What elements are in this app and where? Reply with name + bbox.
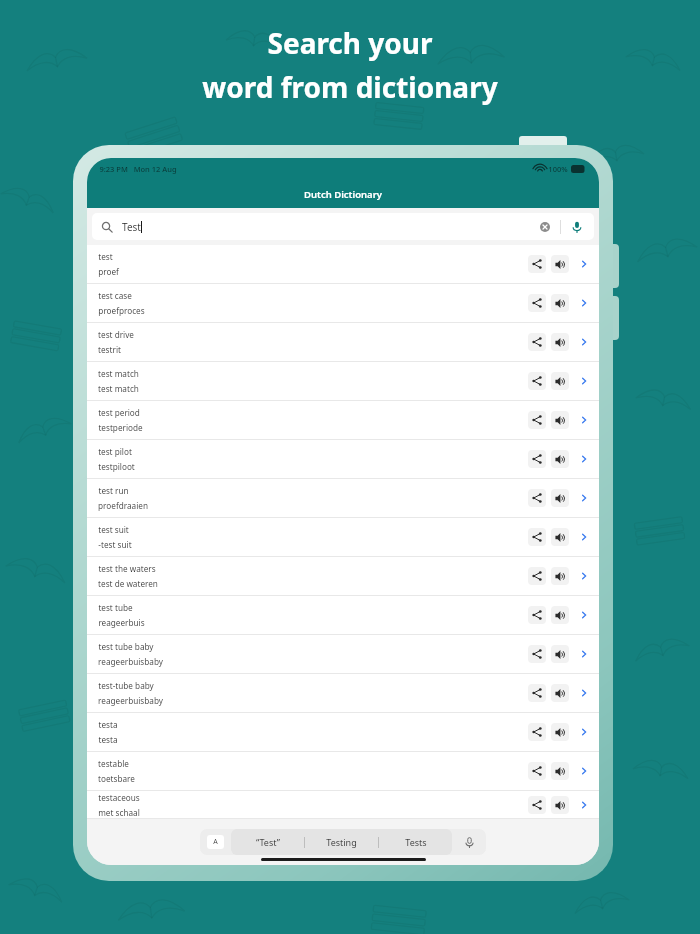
staticText: “Test” xyxy=(256,836,280,848)
button[interactable]: test pilot xyxy=(87,440,599,479)
button[interactable]: Pronounce xyxy=(551,645,569,663)
staticText: test match xyxy=(98,383,139,394)
button[interactable]: Open details xyxy=(577,374,591,388)
staticText: proefproces xyxy=(98,305,145,316)
staticText: test-tube baby xyxy=(98,680,154,691)
button[interactable]: Open details xyxy=(577,491,591,505)
staticText: test de wateren xyxy=(98,578,158,589)
button[interactable]: Share xyxy=(528,294,546,312)
button[interactable]: Open details xyxy=(577,798,591,812)
button[interactable]: Pronounce xyxy=(551,294,569,312)
button[interactable]: Share xyxy=(528,528,546,546)
button[interactable]: Open details xyxy=(577,413,591,427)
button[interactable]: Share xyxy=(528,255,546,273)
staticText: Test xyxy=(122,220,141,234)
button[interactable]: Open details xyxy=(577,764,591,778)
button[interactable]: test period xyxy=(87,401,599,440)
staticText: test the waters xyxy=(98,563,156,574)
button[interactable]: testa xyxy=(87,713,599,752)
button[interactable]: Share xyxy=(528,411,546,429)
button[interactable]: Open details xyxy=(577,530,591,544)
button[interactable]: Open details xyxy=(577,569,591,583)
button[interactable]: Open details xyxy=(577,296,591,310)
button[interactable]: test suit xyxy=(87,518,599,557)
staticText: test drive xyxy=(98,329,134,340)
button[interactable]: Share xyxy=(528,645,546,663)
button[interactable]: test case xyxy=(87,284,599,323)
staticText: A xyxy=(213,837,218,847)
button[interactable]: Pronounce xyxy=(551,567,569,585)
staticText: test run xyxy=(98,485,129,496)
staticText: testable xyxy=(98,758,129,769)
button[interactable]: test-tube baby xyxy=(87,674,599,713)
button[interactable]: Open details xyxy=(577,335,591,349)
button[interactable]: test the waters xyxy=(87,557,599,596)
button[interactable]: Pronounce xyxy=(551,372,569,390)
staticText: test tube xyxy=(98,602,133,613)
button[interactable]: “Test” xyxy=(231,829,304,855)
staticText: proefdraaien xyxy=(98,500,148,511)
staticText: testa xyxy=(98,719,118,730)
button[interactable]: Voice search xyxy=(569,219,585,235)
button[interactable]: Share xyxy=(528,333,546,351)
button[interactable]: Pronounce xyxy=(551,796,569,814)
button[interactable]: testaceous xyxy=(87,791,599,819)
button[interactable]: Share xyxy=(528,450,546,468)
button[interactable]: test drive xyxy=(87,323,599,362)
button[interactable]: Pronounce xyxy=(551,450,569,468)
staticText: word from dictionary xyxy=(202,68,498,106)
button[interactable]: testable xyxy=(87,752,599,791)
staticText: test match xyxy=(98,368,139,379)
staticText: Search your xyxy=(267,24,433,62)
button[interactable]: test run xyxy=(87,479,599,518)
button[interactable]: Pronounce xyxy=(551,411,569,429)
button[interactable]: Pronounce xyxy=(551,528,569,546)
button[interactable]: Open details xyxy=(577,647,591,661)
button[interactable]: Pronounce xyxy=(551,489,569,507)
button[interactable]: Keyboard layout xyxy=(207,835,224,849)
staticText: testaceous xyxy=(98,792,140,803)
button[interactable]: Share xyxy=(528,372,546,390)
staticText: test tube baby xyxy=(98,641,154,652)
button[interactable]: Pronounce xyxy=(551,606,569,624)
staticText: -test suit xyxy=(98,539,132,550)
button[interactable]: Open details xyxy=(577,725,591,739)
button[interactable]: test tube baby xyxy=(87,635,599,674)
button[interactable]: test match xyxy=(87,362,599,401)
button[interactable]: Tests xyxy=(379,829,452,855)
button[interactable]: Share xyxy=(528,684,546,702)
button[interactable]: Clear search xyxy=(537,219,553,235)
button[interactable]: Open details xyxy=(577,686,591,700)
button[interactable]: Share xyxy=(528,489,546,507)
staticText: testpiloot xyxy=(98,461,135,472)
button[interactable]: Share xyxy=(528,762,546,780)
button[interactable]: Pronounce xyxy=(551,333,569,351)
button[interactable]: Share xyxy=(528,567,546,585)
button[interactable]: Pronounce xyxy=(551,255,569,273)
button[interactable]: Open details xyxy=(577,608,591,622)
staticText: testrit xyxy=(98,344,121,355)
button[interactable]: Open details xyxy=(577,452,591,466)
staticText: testa xyxy=(98,734,118,745)
button[interactable]: Test xyxy=(92,213,594,240)
button[interactable]: Share xyxy=(528,606,546,624)
staticText: reageerbuisbaby xyxy=(98,695,163,706)
button[interactable]: Share xyxy=(528,796,546,814)
staticText: reageerbuis xyxy=(98,617,145,628)
button[interactable]: Pronounce xyxy=(551,762,569,780)
button[interactable]: test xyxy=(87,245,599,284)
button[interactable]: test tube xyxy=(87,596,599,635)
staticText: Tests xyxy=(405,836,427,848)
staticText: met schaal xyxy=(98,807,140,818)
staticText: testperiode xyxy=(98,422,143,433)
staticText: 100% xyxy=(548,164,568,174)
button[interactable]: Pronounce xyxy=(551,684,569,702)
button[interactable]: Testing xyxy=(305,829,378,855)
button[interactable]: Dictate xyxy=(462,835,476,849)
staticText: Dutch Dictionary xyxy=(304,188,382,201)
button[interactable]: Share xyxy=(528,723,546,741)
staticText: Testing xyxy=(326,836,357,848)
button[interactable]: Pronounce xyxy=(551,723,569,741)
button[interactable]: Open details xyxy=(577,257,591,271)
staticText: test case xyxy=(98,290,132,301)
